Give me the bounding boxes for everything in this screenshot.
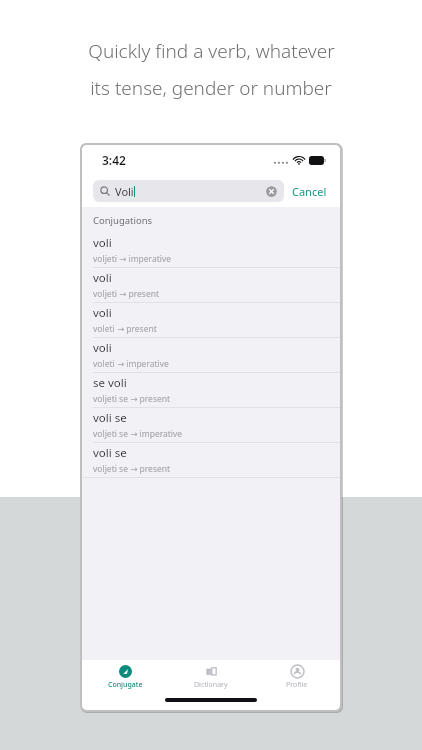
staticText: voleti → present (93, 323, 157, 335)
staticText: Conjugate (108, 680, 143, 690)
button[interactable]: Clear search (266, 186, 277, 197)
staticText: voljeti → imperative (93, 253, 172, 265)
button[interactable]: voli se (82, 443, 340, 477)
staticText: voljeti se → present (93, 393, 171, 405)
staticText: voli (93, 235, 112, 251)
staticText: Cancel (292, 184, 327, 199)
staticText: voli (93, 270, 112, 286)
button[interactable]: Conjugate (82, 665, 168, 690)
staticText: voli (93, 340, 112, 356)
staticText: Voli (115, 184, 134, 199)
staticText: voljeti se → imperative (93, 428, 183, 440)
staticText: Dictionary (194, 680, 228, 690)
button[interactable]: se voli (82, 373, 340, 407)
button[interactable]: voli (82, 268, 340, 302)
button[interactable]: voli (82, 338, 340, 372)
button[interactable]: Dictionary (168, 665, 254, 690)
staticText: se voli (93, 375, 127, 391)
button[interactable]: Voli (93, 180, 284, 202)
staticText: its tense, gender or number (90, 75, 332, 101)
staticText: voljeti → present (93, 288, 159, 300)
staticText: voleti → imperative (93, 358, 169, 370)
staticText: voli se (93, 445, 127, 461)
staticText: voli (93, 305, 112, 321)
staticText: Profile (286, 680, 308, 690)
staticText: Quickly find a verb, whatever (88, 38, 335, 64)
staticText: voljeti se → present (93, 463, 171, 475)
button[interactable]: voli se (82, 408, 340, 442)
button[interactable]: voli (82, 233, 340, 267)
staticText: 3:42 (102, 152, 126, 168)
staticText: Conjugations (93, 214, 153, 227)
button[interactable]: Profile (254, 665, 340, 690)
staticText: voli se (93, 410, 127, 426)
button[interactable]: voli (82, 303, 340, 337)
button[interactable]: Cancel (284, 184, 329, 199)
